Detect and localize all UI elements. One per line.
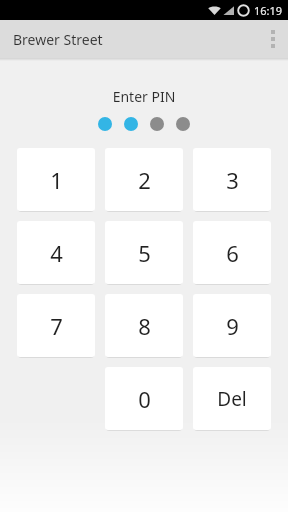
button[interactable]: 0 [105, 367, 183, 430]
button[interactable]: More options [258, 20, 288, 58]
staticText: 3 [226, 165, 239, 195]
staticText: 16:19 [254, 3, 283, 18]
button[interactable]: 4 [17, 221, 95, 284]
staticText: Del [217, 386, 247, 412]
staticText: 0 [138, 384, 151, 414]
staticText: 9 [226, 311, 239, 341]
button[interactable]: 3 [193, 148, 271, 211]
staticText: 7 [50, 311, 63, 341]
button[interactable]: 8 [105, 294, 183, 357]
staticText: Brewer Street [13, 30, 103, 49]
staticText: 8 [138, 311, 151, 341]
staticText: 1 [50, 165, 63, 195]
staticText: Enter PIN [0, 87, 288, 106]
button[interactable]: 7 [17, 294, 95, 357]
button[interactable]: Del [193, 367, 271, 430]
staticText: 5 [138, 238, 151, 268]
staticText: 2 [138, 165, 151, 195]
button[interactable]: 9 [193, 294, 271, 357]
staticText: 6 [226, 238, 239, 268]
staticText: 4 [50, 238, 63, 268]
button[interactable]: 1 [17, 148, 95, 211]
button[interactable]: 5 [105, 221, 183, 284]
button[interactable]: 6 [193, 221, 271, 284]
button[interactable]: 2 [105, 148, 183, 211]
